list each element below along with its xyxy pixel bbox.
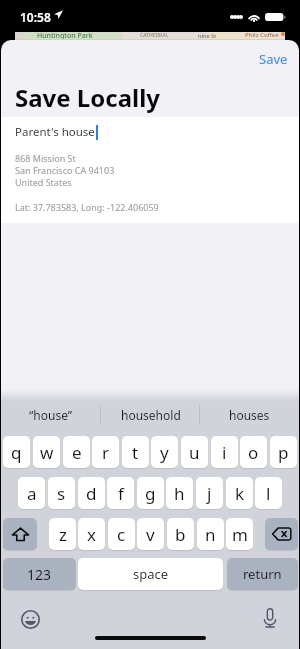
button[interactable]: d (78, 477, 105, 509)
staticText: s (57, 482, 66, 505)
staticText: j (207, 482, 212, 505)
button[interactable]: l (255, 477, 282, 509)
staticText: CATHEDRAL (140, 32, 169, 39)
staticText: h (174, 482, 185, 505)
staticText: x (87, 523, 96, 546)
button[interactable]: c (108, 518, 135, 550)
staticText: United States (15, 176, 72, 188)
staticText: p (278, 441, 289, 464)
staticText: u (189, 441, 200, 464)
button[interactable]: x (78, 518, 105, 550)
staticText: m (232, 523, 248, 546)
button[interactable]: Emoji keyboard (21, 610, 40, 629)
button[interactable]: z (49, 518, 76, 550)
button[interactable]: household (101, 401, 200, 428)
button[interactable]: Delete (265, 518, 298, 550)
staticText: b (175, 523, 186, 546)
button[interactable]: o (240, 436, 267, 468)
button[interactable]: k (226, 477, 253, 509)
button[interactable]: n (197, 518, 224, 550)
button[interactable]: t (122, 436, 149, 468)
staticText: l (266, 482, 271, 505)
button[interactable]: i (211, 436, 238, 468)
staticText: 10:58 (20, 9, 51, 25)
button[interactable]: b (167, 518, 194, 550)
staticText: y (160, 441, 169, 464)
staticText: i (222, 441, 227, 464)
staticText: return (243, 565, 282, 583)
staticText: c (117, 523, 126, 546)
button[interactable]: v (137, 518, 164, 550)
button[interactable]: q (3, 436, 30, 468)
button[interactable]: u (181, 436, 208, 468)
button[interactable]: j (196, 477, 223, 509)
button[interactable]: y (151, 436, 178, 468)
button[interactable]: a (18, 477, 45, 509)
staticText: n (205, 523, 216, 546)
button[interactable]: w (33, 436, 60, 468)
staticText: houses (229, 407, 270, 423)
button[interactable]: 123 (3, 558, 76, 590)
button[interactable]: e (63, 436, 90, 468)
staticText: k (235, 482, 245, 505)
button[interactable]: Dictation (262, 608, 278, 628)
staticText: space (133, 565, 169, 583)
button[interactable]: space (78, 558, 223, 590)
staticText: e (72, 441, 82, 464)
button[interactable]: “house” (1, 401, 101, 428)
staticText: “house” (29, 407, 73, 423)
staticText: Save (259, 50, 288, 68)
staticText: San Francisco CA 94103 (15, 164, 115, 176)
button[interactable]: f (107, 477, 134, 509)
staticText: t (132, 441, 139, 464)
staticText: Lat: 37.783583, Long: -122.406059 (15, 201, 159, 213)
staticText: 868 Mission St (15, 152, 76, 164)
staticText: 123 (27, 565, 52, 584)
button[interactable]: p (270, 436, 297, 468)
staticText: f (118, 482, 124, 505)
button[interactable]: m (226, 518, 253, 550)
staticText: d (86, 482, 97, 505)
button[interactable]: s (48, 477, 75, 509)
staticText: Philz Coffee (245, 31, 279, 39)
button[interactable]: h (166, 477, 193, 509)
button[interactable]: houses (200, 401, 299, 428)
staticText: z (59, 523, 67, 546)
button[interactable]: Shift (3, 518, 37, 550)
staticText: q (11, 441, 22, 464)
staticText: household (121, 407, 181, 423)
staticText: Save Locally (15, 81, 161, 114)
button[interactable]: return (227, 558, 298, 590)
staticText: Huntington Park (37, 31, 93, 39)
staticText: a (27, 482, 37, 505)
button[interactable]: r (92, 436, 119, 468)
staticText: g (145, 482, 156, 505)
staticText: w (40, 441, 54, 464)
staticText: nine St (198, 32, 217, 39)
staticText: o (248, 441, 259, 464)
staticText: r (102, 441, 110, 464)
staticText: Parent's house (15, 124, 95, 140)
button[interactable]: Save (250, 46, 297, 72)
button[interactable]: g (137, 477, 164, 509)
staticText: v (146, 523, 155, 546)
